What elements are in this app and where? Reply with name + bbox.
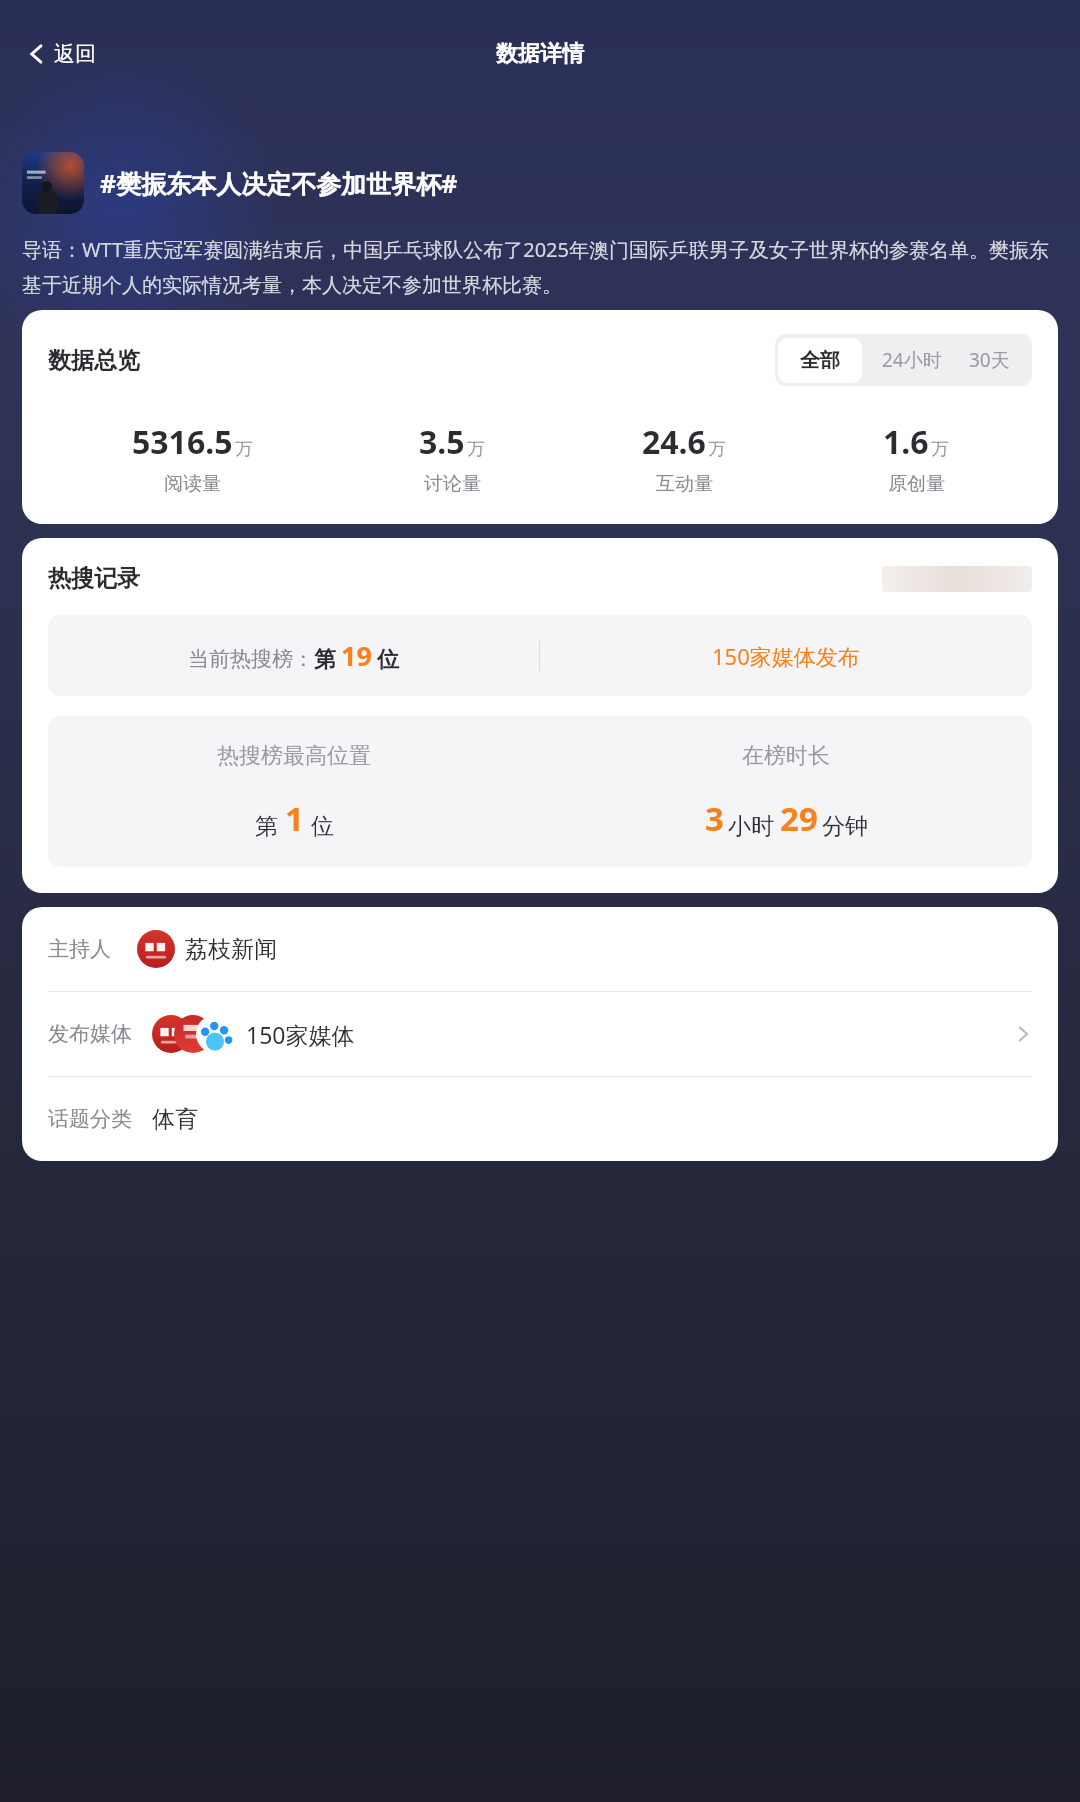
staticText: 19 — [341, 637, 372, 674]
button[interactable]: 发布媒体 — [22, 992, 1058, 1076]
staticText: 万 — [931, 438, 949, 461]
staticText: 万 — [235, 438, 253, 461]
staticText: 数据总览 — [48, 346, 140, 375]
staticText: 150家媒体 — [246, 1019, 355, 1050]
staticText: 150家媒体发布 — [712, 641, 860, 671]
staticText: 1.6 — [883, 420, 929, 464]
staticText: 第 — [255, 812, 278, 841]
staticText: 讨论量 — [424, 472, 481, 496]
staticText: 当前热搜榜： — [188, 646, 314, 672]
button[interactable]: 全部 — [778, 338, 862, 383]
staticText: 第 — [314, 646, 336, 674]
staticText: 话题分类 — [48, 1106, 132, 1132]
staticText: 返回 — [54, 41, 96, 67]
staticText: 体育 — [152, 1105, 198, 1134]
button[interactable]: 主持人 — [22, 907, 1058, 991]
staticText: 1 — [285, 796, 304, 841]
button[interactable]: 30天 — [959, 334, 1032, 386]
staticText: 24小时 — [882, 347, 942, 373]
button[interactable]: 当前热搜榜： — [48, 615, 1032, 696]
staticText: 29 — [780, 796, 818, 841]
staticText: 主持人 — [48, 936, 111, 962]
staticText: 5316.5 — [132, 420, 233, 464]
staticText: 荔枝新闻 — [185, 935, 277, 964]
staticText: 位 — [377, 646, 399, 674]
staticText: #樊振东本人决定不参加世界杯# — [100, 166, 458, 200]
staticText: 30天 — [969, 347, 1010, 373]
staticText: 万 — [708, 438, 726, 461]
staticText: 24.6 — [642, 420, 706, 464]
button[interactable]: 24小时 — [865, 334, 959, 386]
staticText: 位 — [311, 812, 334, 841]
staticText: 热搜榜最高位置 — [217, 742, 371, 770]
button[interactable]: 话题配图 — [22, 152, 84, 214]
staticText: 原创量 — [888, 472, 945, 496]
staticText: 发布媒体 — [48, 1021, 132, 1047]
staticText: 阅读量 — [164, 472, 221, 496]
staticText: 3 — [705, 796, 724, 841]
staticText: 小时 — [728, 812, 774, 841]
staticText: 导语：WTT重庆冠军赛圆满结束后，中国乒乓球队公布了2025年澳门国际乒联男子及… — [22, 236, 1058, 298]
button[interactable]: 热搜榜最高位置 — [48, 716, 1032, 867]
other: 查看全部媒体 — [1014, 1025, 1032, 1043]
staticText: 3.5 — [419, 420, 465, 464]
button[interactable]: 话题分类 — [22, 1077, 1058, 1161]
staticText: 全部 — [800, 348, 840, 373]
staticText: 万 — [467, 438, 485, 461]
staticText: 在榜时长 — [742, 742, 830, 770]
button[interactable]: 返回 — [18, 35, 104, 73]
staticText: 互动量 — [656, 472, 713, 496]
staticText: 热搜记录 — [48, 564, 140, 593]
staticText: 分钟 — [822, 812, 868, 841]
staticText: 数据详情 — [496, 40, 584, 68]
